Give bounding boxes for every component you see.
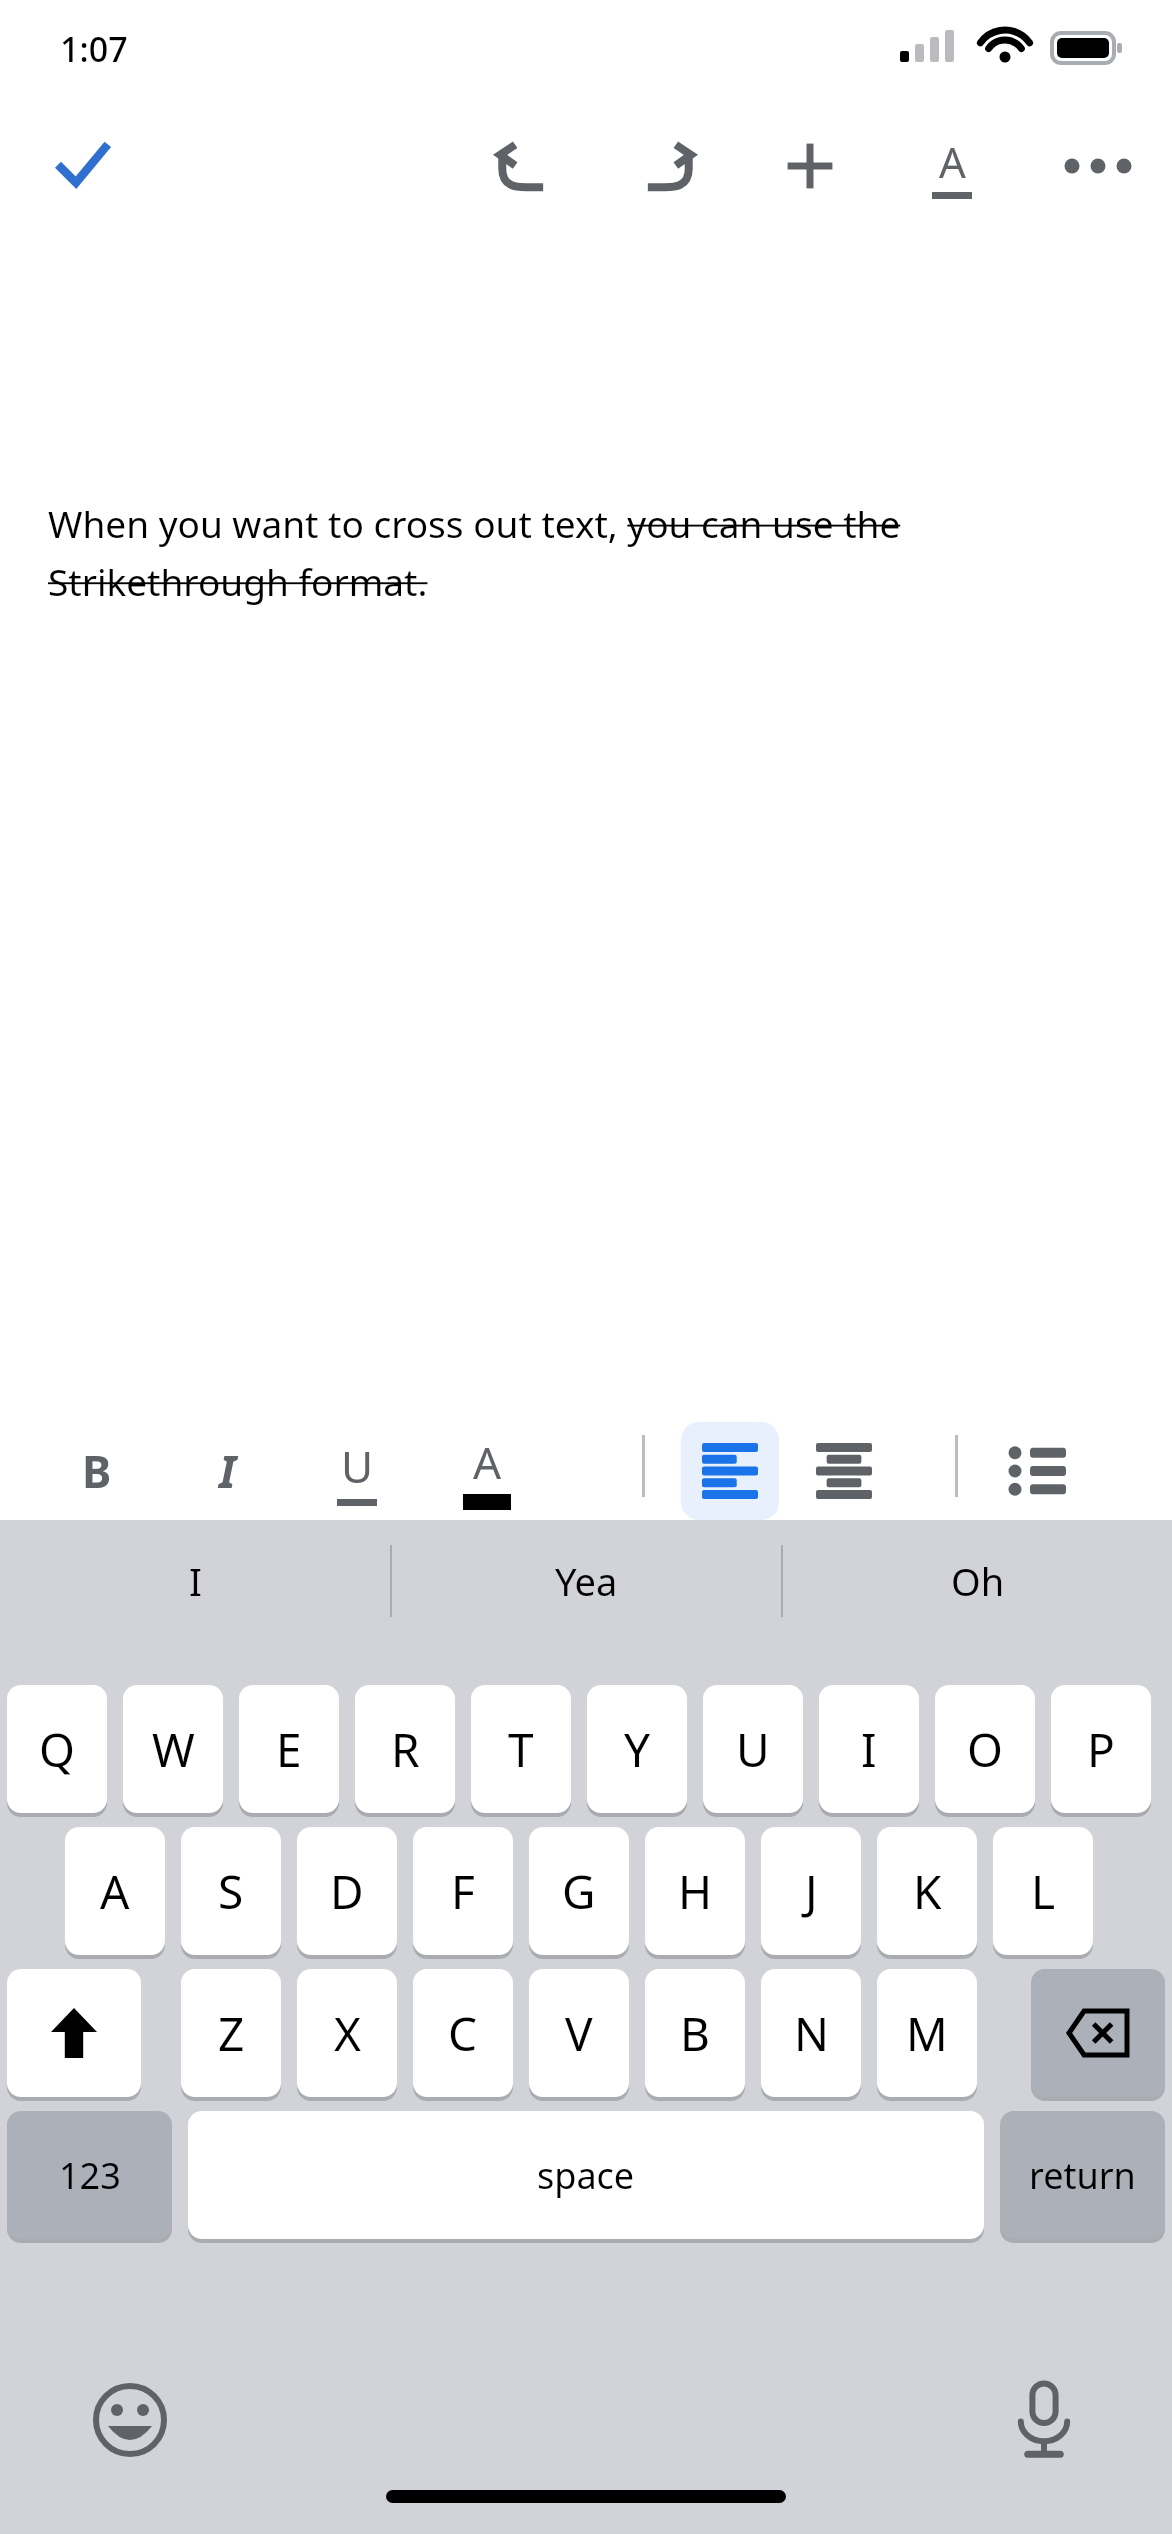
- staticText: W: [152, 1718, 195, 1781]
- button[interactable]: P: [1051, 1685, 1151, 1813]
- staticText: S: [218, 1860, 244, 1923]
- button[interactable]: E: [239, 1685, 339, 1813]
- staticText: O: [967, 1718, 1003, 1781]
- staticText: X: [334, 2002, 361, 2065]
- staticText: V: [565, 2002, 593, 2065]
- button[interactable]: Done: [34, 118, 130, 214]
- button[interactable]: K: [877, 1827, 977, 1955]
- staticText: Oh: [951, 1555, 1005, 1607]
- staticText: G: [562, 1860, 596, 1923]
- button[interactable]: Space: [188, 2111, 984, 2239]
- staticText: B: [680, 2002, 710, 2065]
- button[interactable]: Align left: [681, 1422, 779, 1520]
- button[interactable]: Redo: [620, 118, 716, 214]
- staticText: 1:07: [60, 26, 128, 72]
- button[interactable]: I: [0, 1520, 390, 1642]
- button[interactable]: Q: [7, 1685, 107, 1813]
- button[interactable]: Backspace: [1031, 1969, 1165, 2097]
- button[interactable]: U: [703, 1685, 803, 1813]
- button[interactable]: J: [761, 1827, 861, 1955]
- button[interactable]: O: [935, 1685, 1035, 1813]
- staticText: F: [451, 1860, 475, 1923]
- staticText: B: [82, 1441, 112, 1501]
- button[interactable]: A: [65, 1827, 165, 1955]
- staticText: J: [805, 1860, 818, 1923]
- staticText: A: [100, 1860, 130, 1923]
- staticText: A: [939, 133, 966, 190]
- staticText: E: [276, 1718, 302, 1781]
- staticText: U: [341, 1436, 374, 1496]
- staticText: D: [330, 1860, 364, 1923]
- button[interactable]: N: [761, 1969, 861, 2097]
- button[interactable]: Yea: [392, 1520, 781, 1642]
- button[interactable]: W: [123, 1685, 223, 1813]
- staticText: U: [736, 1718, 770, 1781]
- button[interactable]: M: [877, 1969, 977, 2097]
- button[interactable]: H: [645, 1827, 745, 1955]
- staticText: Y: [624, 1718, 651, 1781]
- button[interactable]: Bulleted list: [991, 1422, 1089, 1520]
- staticText: space: [537, 2151, 635, 2200]
- staticText: A: [473, 1432, 502, 1492]
- button[interactable]: Shift: [7, 1969, 141, 2097]
- staticText: I: [219, 1441, 236, 1501]
- button[interactable]: Z: [181, 1969, 281, 2097]
- staticText: C: [448, 2002, 478, 2065]
- button[interactable]: T: [471, 1685, 571, 1813]
- button[interactable]: Numbers: [7, 2111, 172, 2239]
- button[interactable]: D: [297, 1827, 397, 1955]
- button[interactable]: Dictation: [984, 2360, 1104, 2480]
- button[interactable]: I: [819, 1685, 919, 1813]
- staticText: T: [508, 1718, 534, 1781]
- staticText: When you want to cross out text, you can…: [48, 498, 1128, 606]
- staticText: H: [678, 1860, 713, 1923]
- button[interactable]: X: [297, 1969, 397, 2097]
- button[interactable]: Text color: [438, 1422, 536, 1520]
- staticText: Yea: [555, 1555, 618, 1607]
- button[interactable]: Y: [587, 1685, 687, 1813]
- button[interactable]: R: [355, 1685, 455, 1813]
- staticText: I: [189, 1555, 202, 1607]
- button[interactable]: Underline: [308, 1422, 406, 1520]
- staticText: L: [1031, 1860, 1056, 1923]
- button[interactable]: Italic: [178, 1422, 276, 1520]
- button[interactable]: More options: [1050, 118, 1146, 214]
- button[interactable]: Return: [1000, 2111, 1165, 2239]
- button[interactable]: Text formatting: [904, 118, 1000, 214]
- staticText: K: [913, 1860, 942, 1923]
- button[interactable]: V: [529, 1969, 629, 2097]
- staticText: 123: [59, 2151, 121, 2200]
- button[interactable]: Insert: [762, 118, 858, 214]
- staticText: Q: [39, 1718, 75, 1781]
- button[interactable]: Oh: [783, 1520, 1172, 1642]
- button[interactable]: Emoji: [70, 2360, 190, 2480]
- staticText: M: [906, 2002, 948, 2065]
- staticText: R: [391, 1718, 420, 1781]
- staticText: N: [794, 2002, 829, 2065]
- staticText: I: [861, 1718, 877, 1781]
- button[interactable]: S: [181, 1827, 281, 1955]
- button[interactable]: C: [413, 1969, 513, 2097]
- staticText: return: [1029, 2151, 1136, 2200]
- button[interactable]: G: [529, 1827, 629, 1955]
- button[interactable]: B: [645, 1969, 745, 2097]
- button[interactable]: Bold: [48, 1422, 146, 1520]
- button[interactable]: Align center: [795, 1422, 893, 1520]
- button[interactable]: Undo: [475, 118, 571, 214]
- staticText: Z: [218, 2002, 245, 2065]
- staticText: P: [1087, 1718, 1115, 1781]
- button[interactable]: L: [993, 1827, 1093, 1955]
- button[interactable]: F: [413, 1827, 513, 1955]
